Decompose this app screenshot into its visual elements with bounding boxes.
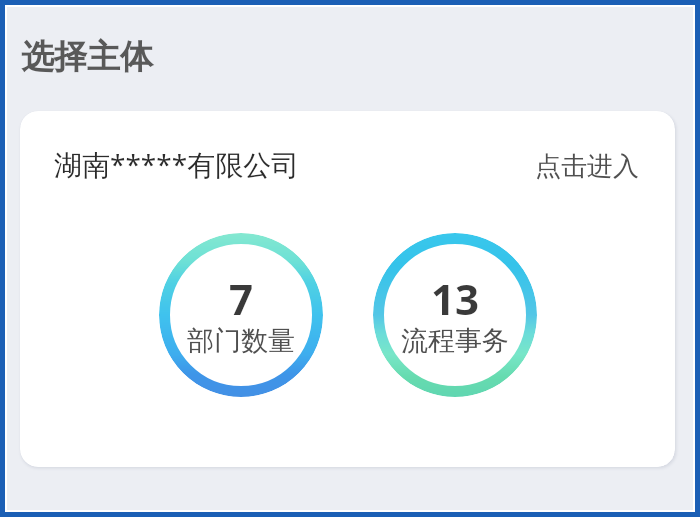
button[interactable]: 流程事务 13: [373, 233, 537, 397]
staticText: 13: [431, 270, 480, 327]
staticText: 点击进入: [535, 150, 639, 182]
staticText: 流程事务: [401, 324, 509, 358]
button[interactable]: 点击进入: [533, 145, 641, 182]
button[interactable]: 部门数量 7: [159, 233, 323, 397]
staticText: 7: [229, 270, 254, 327]
button[interactable]: 湖南*****有限公司: [20, 111, 675, 467]
staticText: 湖南*****有限公司: [54, 145, 300, 183]
staticText: 部门数量: [187, 324, 295, 358]
staticText: 选择主体: [21, 36, 153, 78]
